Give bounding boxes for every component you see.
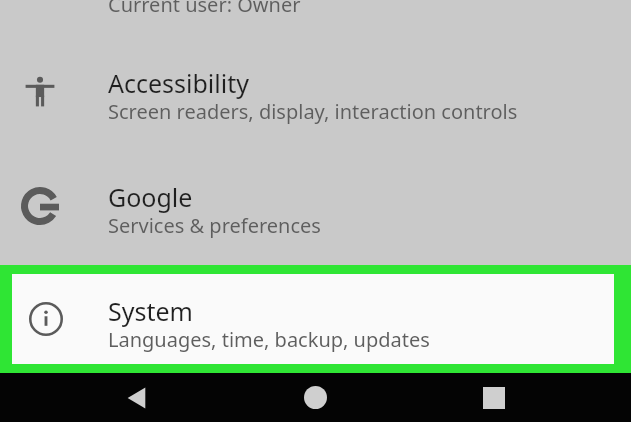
button[interactable]: Recent apps (469, 373, 518, 422)
button[interactable]: Accessibility (0, 46, 631, 138)
staticText: Google (108, 180, 193, 214)
staticText: Languages, time, backup, updates (108, 326, 430, 353)
button[interactable]: Current user: Owner (0, 0, 631, 22)
button[interactable]: Google (0, 160, 631, 252)
staticText: Screen readers, display, interaction con… (108, 98, 518, 125)
button[interactable]: Back (112, 373, 161, 422)
staticText: Services & preferences (108, 212, 321, 239)
staticText: Accessibility (108, 66, 249, 100)
button[interactable]: Home (291, 373, 340, 422)
staticText: System (108, 294, 193, 328)
button[interactable]: System (0, 265, 631, 373)
staticText: Current user: Owner (108, 0, 301, 13)
